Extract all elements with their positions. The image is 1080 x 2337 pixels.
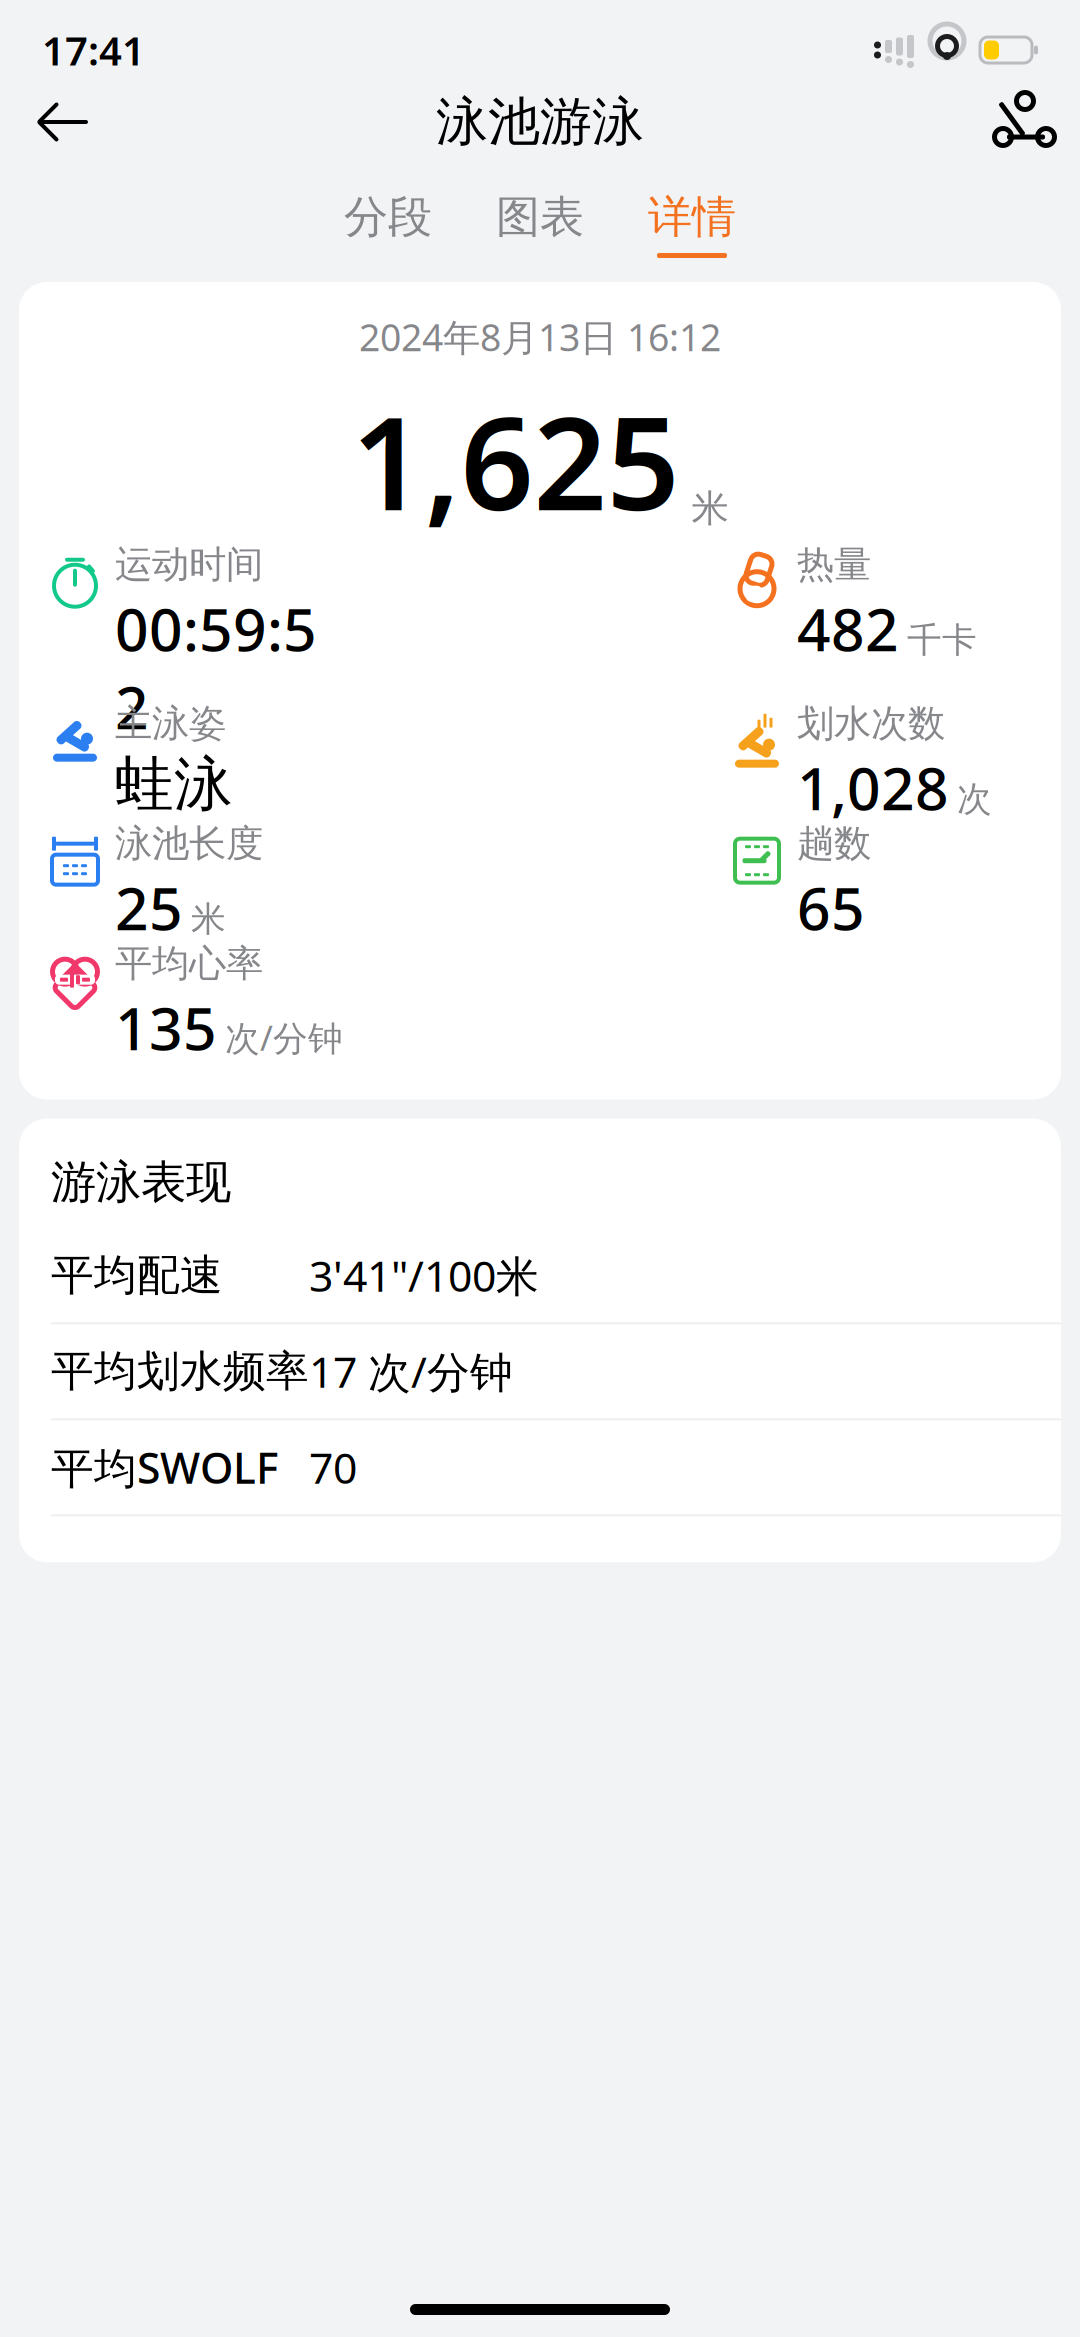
staticText: 热量 — [797, 542, 871, 588]
staticText: 平均划水频率 — [51, 1345, 309, 1397]
staticText: 17 次/分钟 — [309, 1343, 513, 1400]
staticText: 482 — [797, 590, 899, 667]
button[interactable]: 分段 — [336, 190, 440, 258]
staticText: 135 — [115, 988, 217, 1066]
staticText: 17:41 — [42, 23, 145, 76]
staticText: 00:59:52 — [115, 590, 317, 745]
staticText: 次/分钟 — [225, 1014, 343, 1060]
staticText: 游泳表现 — [51, 1155, 231, 1210]
staticText: 分段 — [344, 190, 432, 244]
staticText: 千卡 — [907, 619, 977, 661]
button[interactable]: Share — [974, 80, 1058, 164]
button[interactable]: 详情 — [640, 190, 744, 258]
staticText: 平均配速 — [51, 1249, 223, 1301]
staticText: 米 — [691, 486, 728, 532]
button[interactable]: Back — [22, 80, 106, 164]
staticText: 3'41"/100米 — [309, 1247, 539, 1304]
staticText: 1,625 — [351, 376, 679, 546]
staticText: 65 — [797, 868, 865, 946]
staticText: 米 — [191, 898, 226, 940]
staticText: 平均心率 — [115, 941, 263, 987]
staticText: 图表 — [496, 190, 584, 244]
staticText: 25 — [115, 868, 183, 946]
button[interactable]: 图表 — [488, 190, 592, 258]
staticText: 2024年8月13日 16:12 — [359, 312, 721, 362]
staticText: 主泳姿 — [115, 701, 226, 747]
staticText: 平均SWOLF — [51, 1439, 279, 1496]
staticText: 蛙泳 — [115, 748, 233, 821]
staticText: 70 — [309, 1439, 357, 1496]
staticText: 泳池长度 — [115, 821, 263, 867]
staticText: 次 — [957, 778, 992, 820]
staticText: 详情 — [648, 190, 736, 244]
staticText: 趟数 — [797, 821, 871, 867]
staticText: 泳池游泳 — [436, 90, 644, 154]
staticText: 划水次数 — [797, 701, 945, 747]
staticText: 运动时间 — [115, 542, 263, 588]
staticText: 1,028 — [797, 748, 949, 826]
